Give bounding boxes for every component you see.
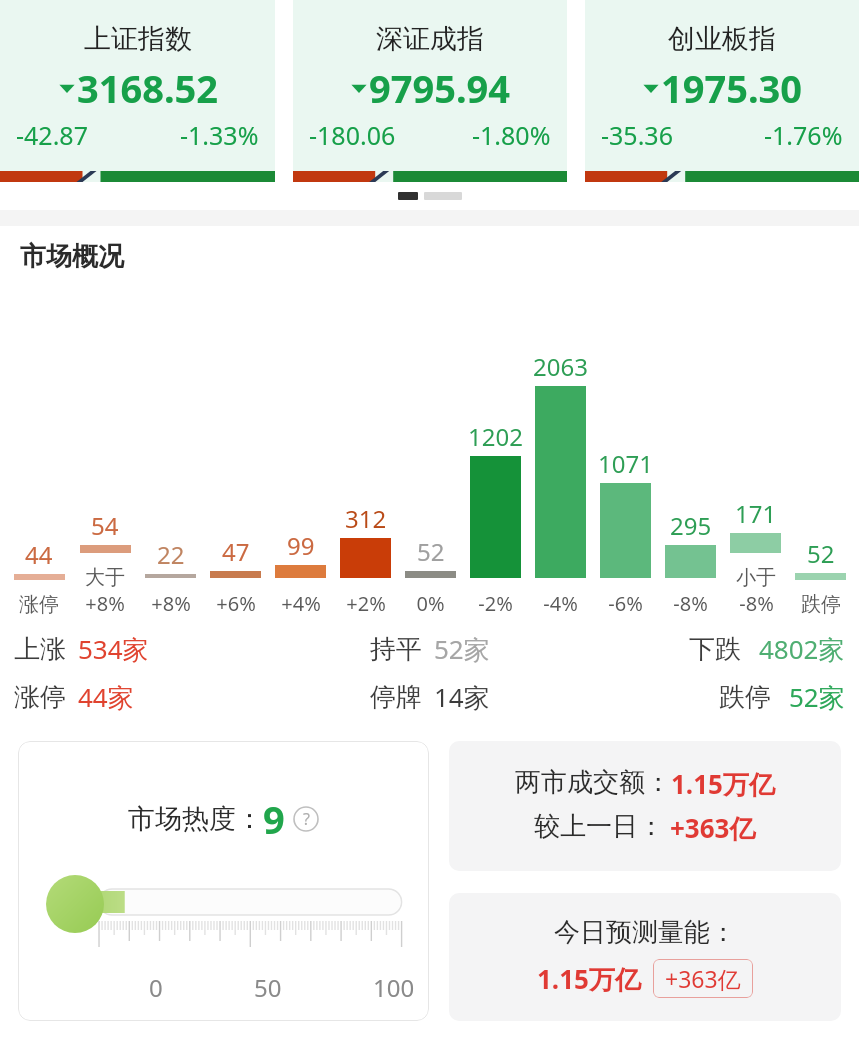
staticText: -1.80% <box>472 118 551 152</box>
staticText: 较上一日： <box>534 810 664 843</box>
staticText: 44 <box>25 538 53 571</box>
staticText: 312 <box>345 502 387 535</box>
staticText: 两市成交额： <box>515 766 671 799</box>
staticText: 14家 <box>434 679 490 715</box>
staticText: +8% <box>151 590 191 617</box>
staticText: 54 <box>91 509 119 542</box>
staticText: 50 <box>254 971 282 1004</box>
staticText: -42.87 <box>16 118 88 152</box>
staticText: 0 <box>149 971 163 1004</box>
staticText: 深证成指 <box>376 22 484 56</box>
staticText: 市场热度： <box>128 802 263 836</box>
staticText: 1.15万亿 <box>671 766 775 802</box>
staticText: 99 <box>287 529 315 562</box>
staticText: -180.06 <box>309 118 396 152</box>
staticText: -1.76% <box>764 118 843 152</box>
staticText: 持平 <box>370 633 422 666</box>
staticText: -8% <box>673 590 708 617</box>
staticText: 22 <box>157 538 185 571</box>
staticText: 涨停 <box>19 592 59 617</box>
staticText: +6% <box>216 590 256 617</box>
staticText: -1.33% <box>180 118 259 152</box>
staticText: 上证指数 <box>84 22 192 56</box>
staticText: 大于 <box>85 565 125 590</box>
staticText: 52 <box>417 535 445 568</box>
staticText: 44家 <box>78 679 134 715</box>
staticText: +2% <box>346 590 386 617</box>
staticText: 跌停 <box>719 681 771 714</box>
staticText: 市场概况 <box>20 240 124 273</box>
staticText: 9 <box>263 793 285 845</box>
staticText: -8% <box>739 590 774 617</box>
staticText: +8% <box>85 590 125 617</box>
staticText: -6% <box>608 590 643 617</box>
staticText: 1071 <box>598 447 653 480</box>
staticText: 涨停 <box>14 681 66 714</box>
button[interactable]: 上证指数 <box>0 0 275 182</box>
staticText: 52家 <box>434 631 490 667</box>
staticText: 100 <box>373 971 415 1004</box>
staticText: 3168.52 <box>77 62 219 114</box>
staticText: 534家 <box>78 631 149 667</box>
staticText: 47 <box>222 535 250 568</box>
staticText: 今日预测量能： <box>554 916 736 949</box>
staticText: +363亿 <box>670 810 756 846</box>
staticText: 1975.30 <box>661 62 803 114</box>
staticText: 停牌 <box>370 681 422 714</box>
button[interactable]: 创业板指 <box>585 0 859 182</box>
staticText: 跌停 <box>801 592 841 617</box>
staticText: 创业板指 <box>668 22 776 56</box>
staticText: 下跌 <box>689 633 741 666</box>
staticText: 4802家 <box>759 631 845 667</box>
button[interactable]: 帮助说明 <box>293 806 319 832</box>
staticText: 9795.94 <box>369 62 511 114</box>
staticText: 52 <box>807 537 835 570</box>
button[interactable]: 深证成指 <box>293 0 567 182</box>
staticText: -35.36 <box>601 118 673 152</box>
button[interactable]: 两市成交额： <box>449 741 841 871</box>
staticText: 上涨 <box>14 633 66 666</box>
button[interactable]: 今日预测量能： <box>449 893 841 1021</box>
button[interactable]: 市场热度： <box>18 741 429 1021</box>
staticText: 2063 <box>533 350 588 383</box>
staticText: 171 <box>735 497 777 530</box>
staticText: 小于 <box>736 565 776 590</box>
staticText: 1.15万亿 <box>537 961 641 997</box>
staticText: -4% <box>543 590 578 617</box>
staticText: +4% <box>281 590 321 617</box>
staticText: -2% <box>478 590 513 617</box>
staticText: 295 <box>670 509 712 542</box>
staticText: +363亿 <box>665 963 741 994</box>
staticText: 1202 <box>468 420 523 453</box>
staticText: 52家 <box>789 679 845 715</box>
staticText: 0% <box>416 590 445 617</box>
staticText: ? <box>303 808 310 830</box>
